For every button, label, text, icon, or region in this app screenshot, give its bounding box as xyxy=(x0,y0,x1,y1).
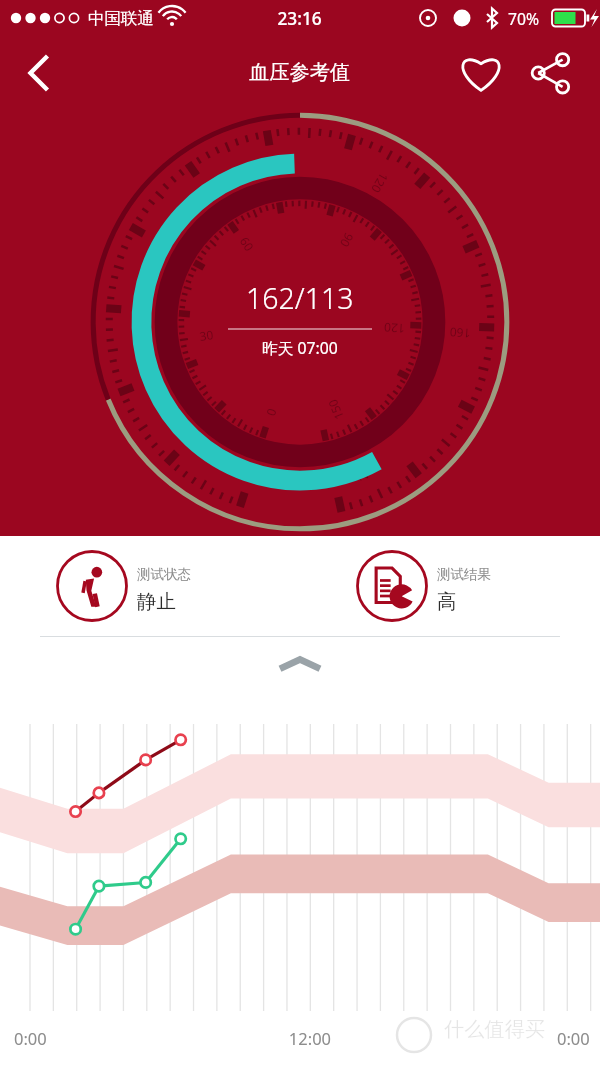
button[interactable] xyxy=(0,536,300,636)
button[interactable]: Back xyxy=(0,36,74,110)
button[interactable]: Favorite xyxy=(452,44,510,102)
button[interactable] xyxy=(300,536,600,636)
button[interactable]: Share xyxy=(522,44,580,102)
